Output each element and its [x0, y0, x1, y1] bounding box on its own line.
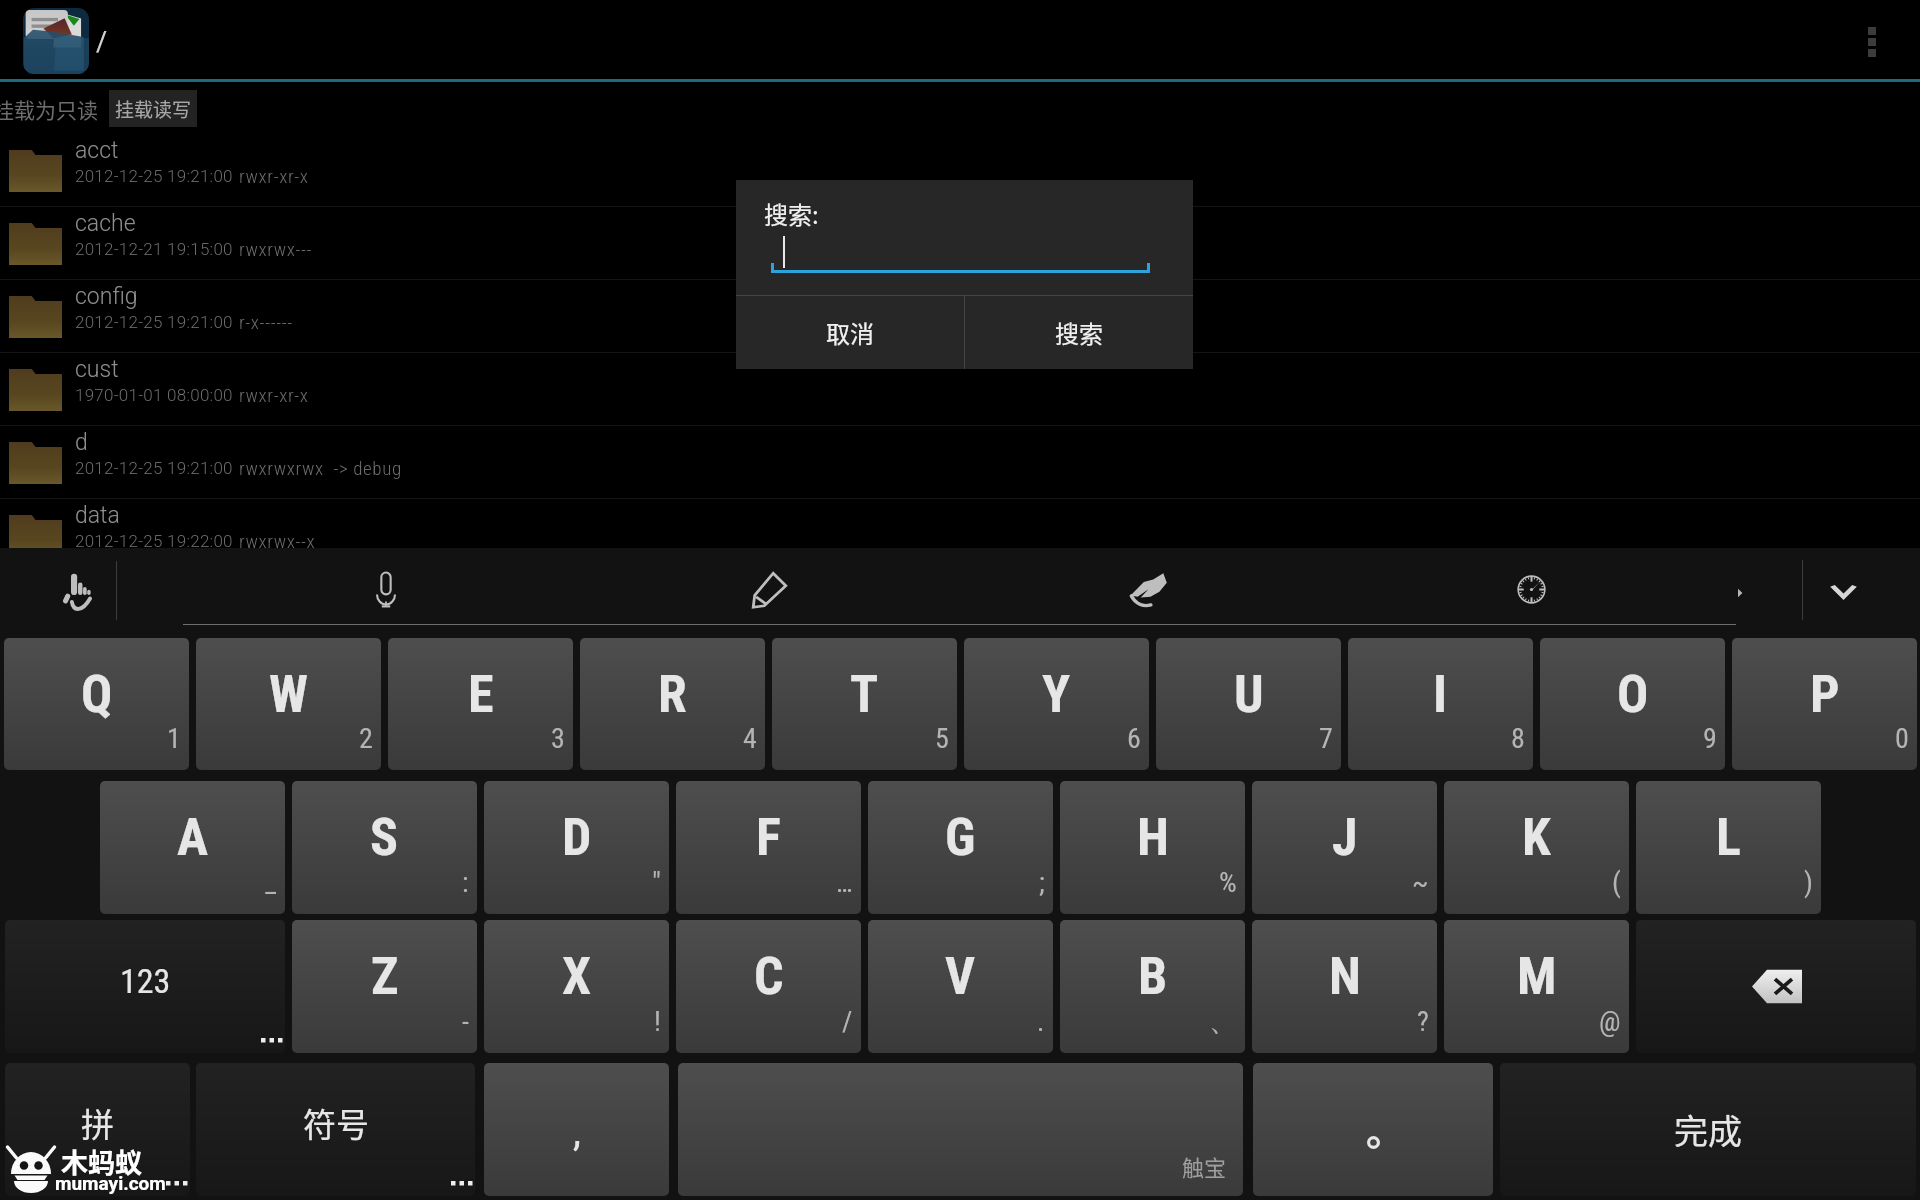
staticText: 取消 [826, 315, 874, 350]
button[interactable]: Z [292, 920, 477, 1053]
button[interactable]: Pinyin mode [5, 1063, 190, 1196]
button[interactable]: G [868, 781, 1053, 914]
button[interactable]: Pen [751, 571, 788, 608]
button[interactable]: Brush [1129, 571, 1168, 610]
button[interactable]: Backspace [1636, 920, 1916, 1053]
staticText: 、 [1209, 1003, 1237, 1038]
button[interactable]: d [0, 426, 1920, 498]
staticText: 木蚂蚁 [61, 1142, 142, 1181]
staticText: rwxrwx--x [239, 530, 316, 552]
staticText: 0 [1895, 722, 1909, 755]
button[interactable]: H [1060, 781, 1245, 914]
button[interactable]: F [676, 781, 861, 914]
staticText: ; [1039, 866, 1045, 899]
staticText: J [1332, 807, 1358, 868]
staticText: R [658, 664, 687, 725]
staticText: H [1137, 807, 1169, 868]
button[interactable]: A [100, 781, 285, 914]
button[interactable]: E [388, 638, 573, 770]
button[interactable]: Comma [484, 1063, 669, 1196]
button[interactable]: W [196, 638, 381, 770]
button[interactable]: Speed [1517, 575, 1546, 604]
button[interactable]: / [86, 19, 118, 65]
button[interactable]: cust [0, 353, 1920, 425]
button[interactable]: cache [0, 207, 1920, 279]
staticText: , [573, 1108, 581, 1155]
staticText: rwxrwxrwx -> debug [239, 457, 402, 479]
button[interactable]: M [1444, 920, 1629, 1053]
staticText: 1970-01-01 08:00:00 [75, 385, 233, 405]
button[interactable]: More tools [1736, 588, 1744, 598]
button[interactable]: 挂载为只读 [0, 90, 100, 127]
button[interactable]: data [0, 499, 1920, 571]
staticText: 8 [1511, 722, 1525, 755]
staticText: E [468, 664, 494, 725]
staticText: / [96, 26, 108, 58]
button[interactable]: D [484, 781, 669, 914]
button[interactable]: More options [1847, 13, 1897, 71]
staticText: ( [1612, 866, 1621, 899]
staticText: % [1219, 866, 1237, 899]
button[interactable]: Done [1500, 1063, 1916, 1196]
button[interactable]: O [1540, 638, 1725, 770]
button[interactable]: U [1156, 638, 1341, 770]
button[interactable]: Space [678, 1063, 1243, 1196]
staticText: … [836, 866, 853, 899]
button[interactable]: Y [964, 638, 1149, 770]
button[interactable]: 挂载读写 [109, 90, 197, 127]
staticText: 6 [1127, 722, 1141, 755]
button[interactable]: B [1060, 920, 1245, 1053]
staticText: r-x------ [239, 311, 293, 333]
staticText: : [462, 866, 469, 899]
staticText: rwxr-xr-x [239, 165, 309, 187]
staticText: C [754, 946, 784, 1007]
button[interactable]: J [1252, 781, 1437, 914]
staticText: mumayi.com [55, 1172, 166, 1194]
button[interactable]: Symbols [196, 1063, 475, 1196]
button[interactable]: 取消 [736, 296, 964, 369]
staticText: rwxrwx--- [239, 238, 313, 260]
button[interactable]: L [1636, 781, 1821, 914]
staticText: 搜索: [764, 196, 819, 231]
staticText: rwxr-xr-x [239, 384, 309, 406]
staticText: M [1517, 946, 1557, 1007]
staticText: K [1522, 807, 1551, 868]
button[interactable]: K [1444, 781, 1629, 914]
button[interactable]: Hide keyboard [1829, 584, 1858, 601]
staticText: 7 [1319, 722, 1333, 755]
staticText: N [1329, 946, 1361, 1007]
button[interactable]: config [0, 280, 1920, 352]
staticText: B [1138, 946, 1168, 1007]
staticText: 触宝 [1182, 1150, 1227, 1182]
button[interactable]: X [484, 920, 669, 1053]
button[interactable]: 搜索 [965, 296, 1193, 369]
staticText: " [652, 866, 661, 899]
button[interactable]: App icon [23, 8, 89, 74]
button[interactable]: Handwriting [64, 573, 92, 611]
button[interactable]: T [772, 638, 957, 770]
staticText: data [75, 502, 120, 529]
button[interactable]: N [1252, 920, 1437, 1053]
staticText: O [1617, 664, 1649, 725]
staticText: cust [75, 356, 119, 383]
staticText: D [562, 807, 592, 868]
button[interactable]: Q [4, 638, 189, 770]
button[interactable]: R [580, 638, 765, 770]
button[interactable]: Period [1253, 1063, 1493, 1196]
staticText: @ [1599, 1005, 1621, 1038]
button[interactable]: I [1348, 638, 1533, 770]
button[interactable]: P [1732, 638, 1917, 770]
staticText: 9 [1703, 722, 1717, 755]
button[interactable]: Numbers [5, 920, 285, 1053]
button[interactable]: Voice input [371, 571, 401, 610]
staticText: ? [1417, 1005, 1429, 1038]
button[interactable]: acct [0, 134, 1920, 206]
button[interactable]: V [868, 920, 1053, 1053]
staticText: 4 [743, 722, 757, 755]
button[interactable]: C [676, 920, 861, 1053]
button[interactable]: S [292, 781, 477, 914]
staticText: 2012-12-25 19:22:00 [75, 531, 233, 551]
staticText: ! [654, 1005, 661, 1038]
staticText: L [1716, 807, 1741, 868]
staticText: Y [1042, 664, 1071, 725]
